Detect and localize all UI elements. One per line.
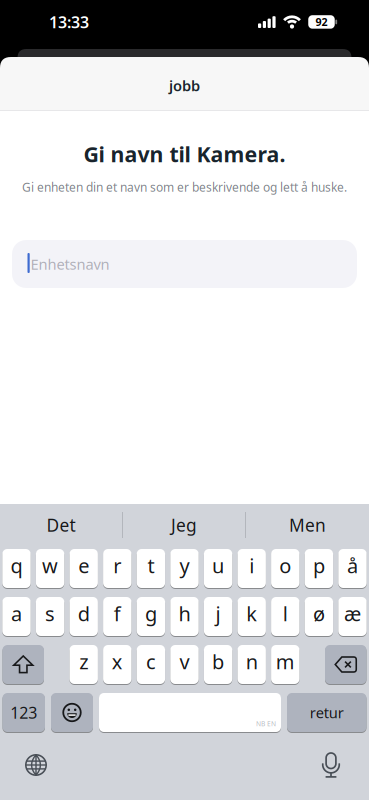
staticText: p <box>313 552 325 579</box>
staticText: c <box>146 648 156 675</box>
staticText: å <box>347 552 358 579</box>
button[interactable]: l <box>271 596 299 636</box>
button[interactable]: i <box>237 548 266 588</box>
button[interactable]: m <box>271 644 299 684</box>
button[interactable]: 123 <box>2 692 45 732</box>
button[interactable]: f <box>103 596 131 636</box>
staticText: e <box>78 552 89 579</box>
button[interactable]: Det <box>0 505 122 545</box>
staticText: x <box>112 648 123 675</box>
staticText: y <box>179 552 189 579</box>
staticText: retur <box>310 703 344 722</box>
staticText: u <box>212 552 224 579</box>
staticText: j <box>216 600 221 627</box>
button[interactable]: s <box>36 596 64 636</box>
button[interactable]: g <box>137 596 165 636</box>
staticText: b <box>212 648 224 675</box>
button[interactable]: y <box>170 548 199 588</box>
button[interactable]: b <box>204 644 232 684</box>
button[interactable]: j <box>204 596 232 636</box>
staticText: q <box>10 552 22 579</box>
staticText: m <box>276 648 295 675</box>
button[interactable]: ø <box>305 596 333 636</box>
button[interactable]: Emoji <box>51 692 93 732</box>
button[interactable]: z <box>69 644 98 684</box>
staticText: Gi navn til Kamera. <box>83 140 285 168</box>
staticText: a <box>11 600 22 627</box>
staticText: d <box>78 600 90 627</box>
button[interactable]: Men <box>246 505 369 545</box>
button[interactable]: Shift <box>2 644 44 684</box>
button[interactable]: Neste tastatur <box>15 744 57 786</box>
button[interactable]: e <box>69 548 98 588</box>
staticText: g <box>145 600 157 627</box>
staticText: Enhetsnavn <box>30 254 109 274</box>
button[interactable]: æ <box>338 596 367 636</box>
staticText: jobb <box>169 76 200 95</box>
staticText: Gi enheten din et navn som er beskrivend… <box>22 179 347 195</box>
staticText: s <box>45 600 55 627</box>
staticText: o <box>279 552 291 579</box>
staticText: i <box>249 552 254 579</box>
staticText: Men <box>289 513 326 536</box>
staticText: n <box>246 648 258 675</box>
staticText: t <box>147 552 154 579</box>
button[interactable]: v <box>170 644 199 684</box>
staticText: 92 <box>315 15 327 29</box>
staticText: v <box>179 648 189 675</box>
button[interactable]: x <box>103 644 131 684</box>
button[interactable]: Delete <box>325 644 366 684</box>
staticText: l <box>283 600 288 627</box>
button[interactable]: å <box>338 548 367 588</box>
button[interactable]: d <box>69 596 98 636</box>
button[interactable]: u <box>204 548 232 588</box>
button[interactable]: c <box>137 644 165 684</box>
staticText: ø <box>313 600 325 627</box>
button[interactable]: Jeg <box>123 505 245 545</box>
button[interactable]: k <box>237 596 266 636</box>
staticText: Det <box>46 513 75 536</box>
button[interactable]: w <box>36 548 64 588</box>
button[interactable]: n <box>237 644 266 684</box>
staticText: Jeg <box>171 513 197 536</box>
staticText: h <box>178 600 190 627</box>
button[interactable]: Diktering <box>310 744 352 786</box>
button[interactable]: Mellomrom <box>99 692 281 732</box>
button[interactable]: retur <box>287 692 366 732</box>
staticText: æ <box>344 600 361 627</box>
button[interactable]: r <box>103 548 131 588</box>
button[interactable]: h <box>170 596 199 636</box>
staticText: z <box>79 648 88 675</box>
staticText: r <box>113 552 121 579</box>
button[interactable]: q <box>2 548 31 588</box>
staticText: f <box>114 600 121 627</box>
staticText: w <box>42 552 58 579</box>
button[interactable]: Enhetsnavn <box>12 240 357 288</box>
staticText: 13:33 <box>49 11 89 33</box>
button[interactable]: o <box>271 548 299 588</box>
button[interactable]: a <box>2 596 31 636</box>
staticText: 123 <box>10 702 37 723</box>
button[interactable]: t <box>137 548 165 588</box>
staticText: k <box>246 600 257 627</box>
button[interactable]: p <box>305 548 333 588</box>
staticText: NB EN <box>256 719 276 728</box>
